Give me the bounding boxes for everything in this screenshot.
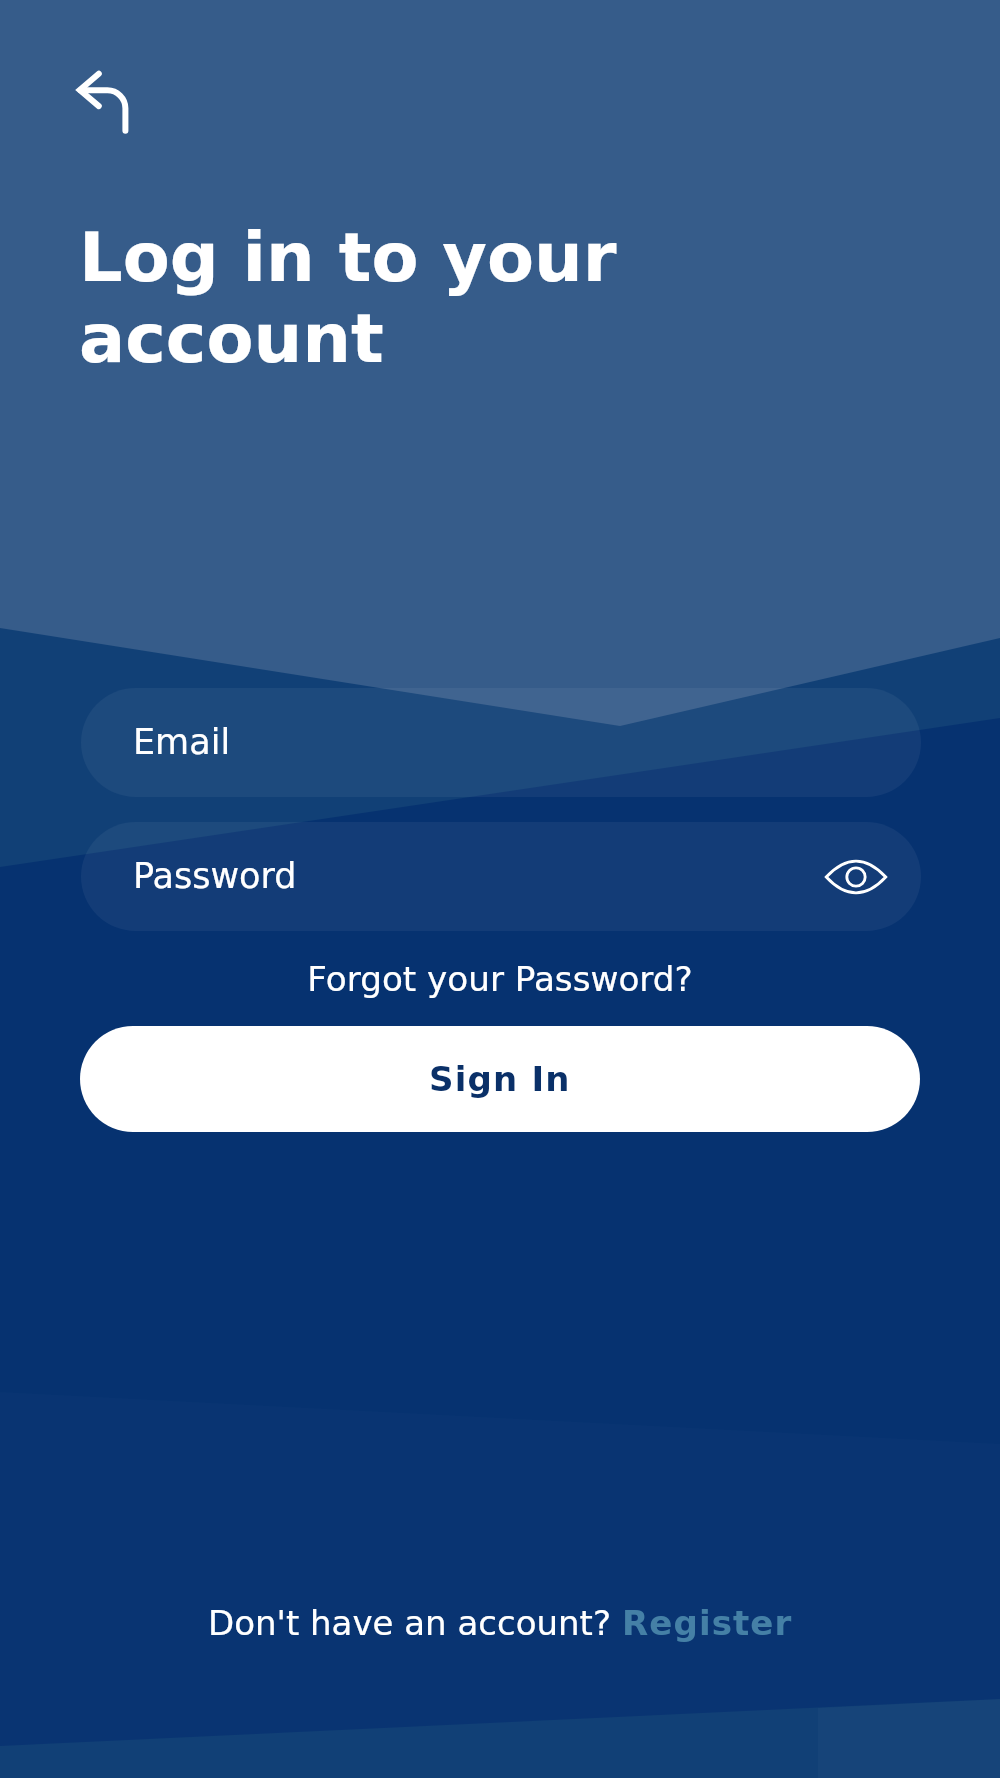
staticText: Register [622,1603,793,1643]
button[interactable]: Email [81,688,921,797]
button[interactable]: Don't have an account? [208,1603,793,1643]
button[interactable]: Sign In [80,1026,920,1132]
staticText: Log in to your account [79,217,617,379]
staticText: Email [133,722,231,763]
button[interactable]: Back [54,50,150,146]
staticText: Sign In [429,1059,571,1099]
staticText: Don't have an account? [208,1603,622,1643]
button[interactable]: Forgot your Password? [307,959,693,999]
button[interactable]: Password [81,822,921,931]
button[interactable]: Show password [825,846,887,908]
staticText: Password [133,856,297,897]
